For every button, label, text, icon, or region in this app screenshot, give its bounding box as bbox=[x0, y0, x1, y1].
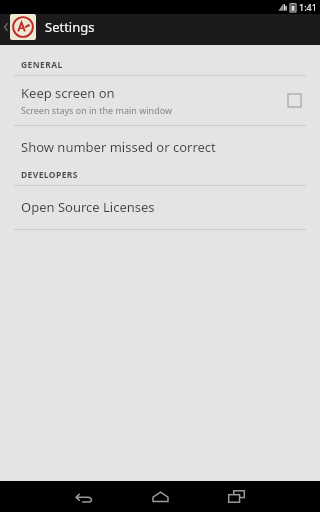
button[interactable]: Keep screen on checkbox bbox=[282, 88, 306, 112]
button[interactable]: Recents bbox=[213, 481, 259, 512]
button[interactable]: Back bbox=[61, 481, 107, 512]
button[interactable]: Settings bbox=[2, 14, 320, 40]
button[interactable]: Open Source Licenses bbox=[0, 186, 320, 229]
staticText: Keep screen on bbox=[21, 84, 115, 102]
staticText: Settings bbox=[45, 18, 95, 36]
staticText: Show number missed or correct bbox=[21, 138, 216, 156]
staticText: 1:41 bbox=[299, 1, 317, 13]
staticText: Open Source Licenses bbox=[21, 198, 155, 216]
button[interactable]: Show number missed or correct bbox=[0, 126, 320, 169]
staticText: GENERAL bbox=[21, 59, 63, 71]
button[interactable]: Home bbox=[137, 481, 183, 512]
staticText: Screen stays on in the main window bbox=[21, 104, 173, 116]
button[interactable]: Keep screen on bbox=[0, 76, 320, 125]
staticText: DEVELOPERS bbox=[21, 169, 78, 181]
